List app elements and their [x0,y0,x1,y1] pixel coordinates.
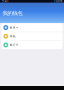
button[interactable]: 账单 [1,23,63,32]
button[interactable]: 零钱 [1,32,63,40]
staticText: 9:41 [2,0,9,3]
staticText: 100% [54,0,62,3]
staticText: 零钱 [10,35,16,38]
staticText: 银行卡 [10,43,19,47]
button[interactable]: 银行卡 [1,41,63,49]
staticText: 我的钱包 [2,10,22,17]
staticText: 账单 [10,26,16,29]
